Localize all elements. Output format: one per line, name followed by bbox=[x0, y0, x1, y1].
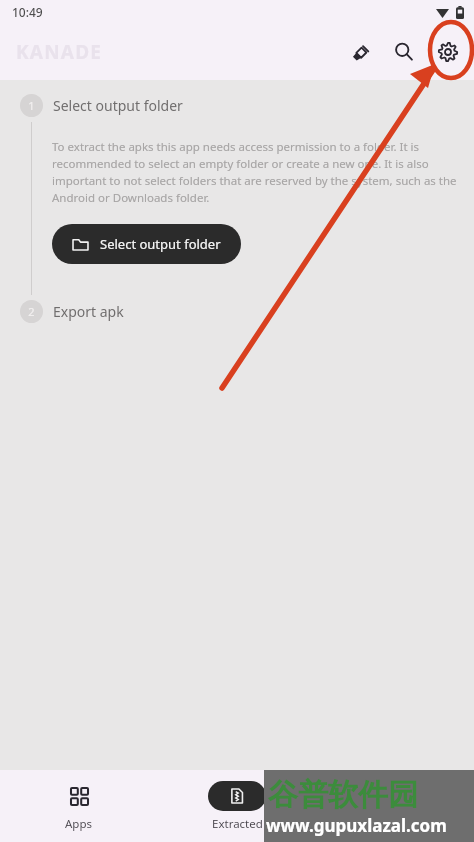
button[interactable]: Apps bbox=[0, 770, 158, 842]
staticText: Apps bbox=[65, 816, 93, 832]
staticText: 1 bbox=[28, 98, 35, 113]
staticText: 谷普软件园 bbox=[268, 776, 418, 814]
staticText: 2 bbox=[28, 304, 35, 319]
staticText: Extracted bbox=[212, 816, 263, 832]
staticText: www.gupuxlazal.com bbox=[266, 814, 447, 837]
staticText: To extract the apks this app needs acces… bbox=[52, 139, 464, 206]
button[interactable]: Select output folder bbox=[52, 224, 241, 264]
staticText: 10:49 bbox=[12, 4, 43, 20]
staticText: Select output folder bbox=[53, 96, 183, 115]
staticText: KANADE bbox=[16, 39, 103, 65]
button[interactable]: Search bbox=[382, 30, 426, 74]
button[interactable]: Extracted bbox=[158, 770, 316, 842]
staticText: Export apk bbox=[53, 302, 124, 321]
staticText: Select output folder bbox=[100, 235, 221, 253]
button[interactable]: Theme bbox=[338, 30, 382, 74]
button[interactable]: Settings bbox=[426, 30, 470, 74]
